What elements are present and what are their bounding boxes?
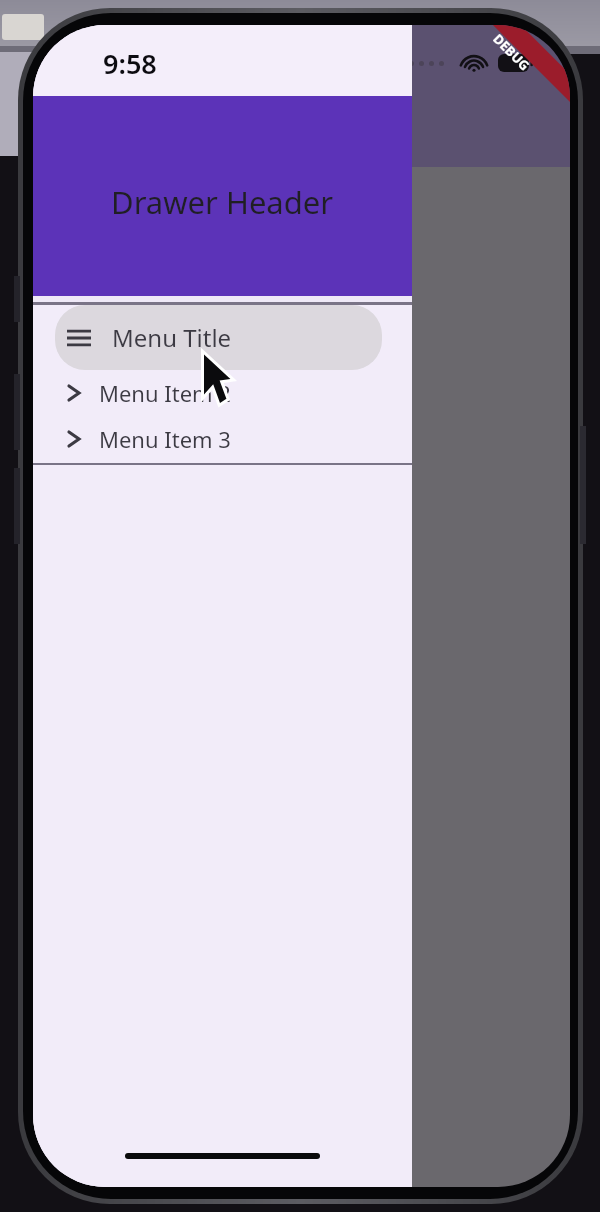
button[interactable]: Menu [55,305,382,370]
staticText: ellet [524,40,567,69]
button[interactable]: Menu Item 2 [55,370,382,416]
other: Menu [67,329,91,347]
staticText: Menu Title [112,321,232,354]
staticText: 9:58 [103,45,157,82]
staticText: Drawer Header [111,181,334,223]
staticText: DEBUG [489,30,534,74]
staticText: Menu Item 3 [99,424,231,454]
staticText: Menu Item 2 [99,378,231,408]
button[interactable]: Menu Item 3 [55,416,382,462]
